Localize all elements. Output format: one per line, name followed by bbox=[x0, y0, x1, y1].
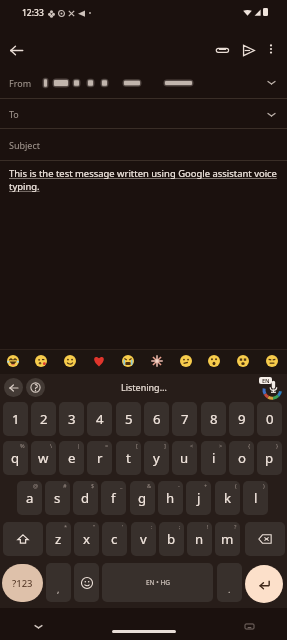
staticText: 7 bbox=[181, 410, 189, 428]
staticText: l bbox=[254, 489, 258, 507]
button[interactable]: 9 bbox=[229, 402, 254, 436]
button[interactable]: 5 bbox=[116, 402, 141, 436]
button[interactable]: p bbox=[257, 441, 282, 475]
button[interactable]: Emoji 9 bbox=[232, 350, 253, 371]
button[interactable]: Change keyboard bbox=[243, 620, 256, 633]
button[interactable]: t bbox=[116, 441, 141, 475]
button[interactable]: j bbox=[186, 481, 211, 515]
staticText: f bbox=[111, 489, 116, 507]
staticText: ] bbox=[164, 442, 166, 450]
staticText: > bbox=[219, 442, 223, 450]
staticText: # bbox=[63, 482, 67, 490]
staticText: * bbox=[64, 523, 68, 531]
staticText: 2 bbox=[40, 410, 48, 428]
staticText: g bbox=[138, 489, 147, 507]
button[interactable]: Back bbox=[4, 378, 23, 397]
button[interactable]: To bbox=[0, 99, 287, 129]
button[interactable]: Backspace bbox=[245, 522, 285, 556]
button[interactable]: 7 bbox=[172, 402, 197, 436]
staticText: 0 bbox=[266, 410, 274, 428]
staticText: t bbox=[126, 449, 131, 467]
button[interactable]: l bbox=[243, 481, 268, 515]
button[interactable]: Emoji 3 bbox=[59, 350, 80, 371]
button[interactable]: x bbox=[74, 522, 99, 556]
button[interactable]: Emoji 1 bbox=[2, 350, 23, 371]
button[interactable]: EN • HG bbox=[102, 563, 213, 602]
button[interactable]: 3 bbox=[59, 402, 84, 436]
staticText: [ bbox=[136, 442, 138, 450]
button[interactable]: n bbox=[187, 522, 212, 556]
button[interactable]: From bbox=[0, 66, 287, 99]
button[interactable]: Shift bbox=[3, 522, 43, 556]
button[interactable]: f bbox=[101, 481, 126, 515]
button[interactable]: Emoji 6 bbox=[146, 350, 167, 371]
staticText: s bbox=[54, 489, 61, 507]
staticText: _ bbox=[120, 482, 123, 490]
button[interactable]: z bbox=[46, 522, 71, 556]
button[interactable]: Emoji 10 bbox=[261, 350, 282, 371]
staticText: - bbox=[178, 482, 180, 490]
staticText: To bbox=[9, 108, 19, 120]
staticText: . bbox=[228, 583, 231, 595]
button[interactable]: u bbox=[172, 441, 197, 475]
button[interactable]: Subject bbox=[0, 129, 287, 161]
button[interactable]: Emoji 7 bbox=[175, 350, 196, 371]
button[interactable]: s bbox=[45, 481, 70, 515]
staticText: : bbox=[151, 523, 153, 531]
button[interactable]: More options bbox=[259, 37, 283, 61]
staticText: { bbox=[248, 442, 251, 450]
button[interactable]: Symbols bbox=[2, 564, 43, 602]
button[interactable]: 2 bbox=[31, 402, 56, 436]
staticText: ?123 bbox=[12, 577, 33, 590]
button[interactable]: 6 bbox=[144, 402, 169, 436]
button[interactable]: Emoji 5 bbox=[117, 350, 138, 371]
staticText: From bbox=[9, 77, 32, 89]
button[interactable]: k bbox=[215, 481, 240, 515]
button[interactable]: Help bbox=[26, 378, 45, 397]
button[interactable]: , bbox=[46, 563, 71, 602]
button[interactable]: c bbox=[102, 522, 127, 556]
button[interactable]: g bbox=[130, 481, 155, 515]
button[interactable]: Send bbox=[235, 37, 261, 63]
button[interactable]: 4 bbox=[87, 402, 112, 436]
button[interactable]: . bbox=[217, 563, 242, 602]
button[interactable]: Emoji bbox=[74, 563, 99, 602]
button[interactable]: e bbox=[59, 441, 84, 475]
staticText: 9 bbox=[238, 410, 246, 428]
staticText: % bbox=[20, 442, 25, 450]
button[interactable]: This is the test message written using G… bbox=[0, 161, 287, 349]
button[interactable]: w bbox=[31, 441, 56, 475]
button[interactable]: Emoji 4 bbox=[88, 350, 109, 371]
button[interactable]: Voice input bbox=[258, 375, 284, 399]
button[interactable]: a bbox=[17, 481, 42, 515]
staticText: ; bbox=[179, 523, 181, 531]
button[interactable]: 0 bbox=[257, 402, 282, 436]
button[interactable]: Attach file bbox=[209, 37, 235, 63]
button[interactable]: i bbox=[201, 441, 226, 475]
button[interactable]: 8 bbox=[201, 402, 226, 436]
staticText: a bbox=[26, 489, 34, 507]
button[interactable]: o bbox=[229, 441, 254, 475]
button[interactable]: b bbox=[159, 522, 184, 556]
staticText: z bbox=[55, 530, 62, 548]
button[interactable]: r bbox=[87, 441, 112, 475]
button[interactable]: Emoji 2 bbox=[30, 350, 51, 371]
staticText: q bbox=[11, 449, 20, 467]
staticText: " bbox=[93, 523, 96, 531]
staticText: u bbox=[180, 449, 189, 467]
button[interactable]: h bbox=[158, 481, 183, 515]
button[interactable]: 1 bbox=[3, 402, 28, 436]
button[interactable]: m bbox=[215, 522, 240, 556]
staticText: m bbox=[221, 530, 234, 548]
button[interactable]: Emoji 8 bbox=[203, 350, 224, 371]
button[interactable]: q bbox=[3, 441, 28, 475]
button[interactable]: d bbox=[73, 481, 98, 515]
button[interactable]: y bbox=[144, 441, 169, 475]
staticText: d bbox=[81, 489, 90, 507]
staticText: 12:33 bbox=[22, 7, 44, 19]
button[interactable]: v bbox=[131, 522, 156, 556]
button[interactable]: Back bbox=[3, 37, 29, 63]
button[interactable]: Hide keyboard bbox=[30, 618, 46, 634]
button[interactable]: Enter bbox=[245, 565, 283, 603]
staticText: $ bbox=[91, 482, 95, 490]
